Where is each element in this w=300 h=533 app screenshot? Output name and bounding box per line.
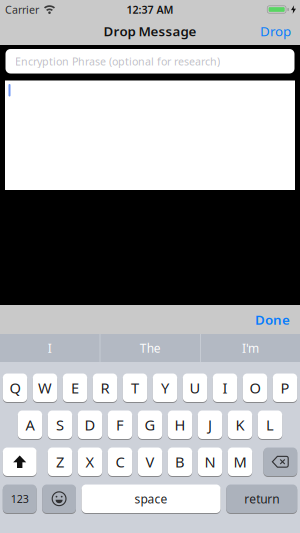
staticText: space: [135, 491, 168, 507]
button[interactable]: U: [183, 373, 207, 402]
staticText: I'm: [242, 340, 259, 356]
staticText: B: [175, 452, 185, 471]
staticText: S: [56, 415, 64, 434]
staticText: Encryption Phrase (optional for research…: [15, 54, 220, 68]
staticText: V: [145, 452, 154, 471]
staticText: N: [204, 452, 215, 471]
button[interactable]: F: [108, 410, 132, 439]
staticText: U: [189, 378, 200, 397]
button[interactable]: Drop: [260, 23, 300, 41]
button[interactable]: Q: [3, 373, 27, 402]
button[interactable]: The: [100, 334, 200, 362]
button[interactable]: C: [108, 447, 132, 476]
button[interactable]: I: [0, 334, 99, 362]
button[interactable]: Done: [255, 311, 300, 328]
button[interactable]: J: [198, 410, 222, 439]
button[interactable]: H: [168, 410, 192, 439]
staticText: The: [140, 340, 161, 356]
button[interactable]: G: [138, 410, 162, 439]
button[interactable]: K: [228, 410, 252, 439]
staticText: Q: [9, 378, 20, 397]
staticText: Y: [161, 378, 169, 397]
staticText: X: [85, 452, 94, 471]
button[interactable]: R: [93, 373, 117, 402]
staticText: E: [71, 378, 79, 397]
staticText: A: [25, 415, 34, 434]
button[interactable]: L: [258, 410, 282, 439]
staticText: J: [208, 415, 212, 434]
staticText: R: [100, 378, 109, 397]
staticText: 123: [11, 492, 29, 506]
button[interactable]: [5, 80, 295, 190]
button[interactable]: 123: [3, 484, 37, 513]
button[interactable]: T: [123, 373, 147, 402]
staticText: W: [38, 378, 52, 397]
staticText: C: [115, 452, 124, 471]
staticText: K: [235, 415, 244, 434]
staticText: M: [233, 452, 246, 471]
button[interactable]: W: [33, 373, 57, 402]
staticText: 12:37 AM: [126, 2, 173, 17]
button[interactable]: N: [198, 447, 222, 476]
button[interactable]: O: [243, 373, 267, 402]
staticText: O: [249, 378, 260, 397]
staticText: Drop Message: [103, 22, 196, 40]
button[interactable]: Encryption Phrase (optional for research…: [5, 49, 294, 73]
staticText: P: [280, 378, 289, 397]
button[interactable]: Z: [48, 447, 72, 476]
staticText: H: [174, 415, 185, 434]
staticText: return: [244, 491, 279, 507]
button[interactable]: A: [18, 410, 42, 439]
staticText: Carrier: [5, 2, 39, 17]
staticText: T: [131, 378, 139, 397]
staticText: Done: [255, 311, 290, 328]
button[interactable]: Y: [153, 373, 177, 402]
button[interactable]: I'm: [201, 334, 300, 362]
button[interactable]: P: [273, 373, 297, 402]
staticText: F: [116, 415, 124, 434]
button[interactable]: M: [228, 447, 252, 476]
staticText: G: [144, 415, 155, 434]
button[interactable]: X: [78, 447, 102, 476]
button[interactable]: return: [226, 484, 297, 513]
staticText: I: [48, 340, 52, 356]
button[interactable]: [42, 484, 76, 513]
button[interactable]: B: [168, 447, 192, 476]
staticText: Drop: [260, 22, 291, 40]
button[interactable]: S: [48, 410, 72, 439]
staticText: Z: [56, 452, 64, 471]
button[interactable]: [263, 447, 297, 476]
button[interactable]: [3, 447, 37, 476]
button[interactable]: E: [63, 373, 87, 402]
button[interactable]: space: [82, 484, 221, 513]
staticText: L: [266, 415, 274, 434]
staticText: D: [84, 415, 95, 434]
button[interactable]: D: [78, 410, 102, 439]
button[interactable]: V: [138, 447, 162, 476]
staticText: I: [222, 378, 227, 397]
button[interactable]: I: [213, 373, 237, 402]
